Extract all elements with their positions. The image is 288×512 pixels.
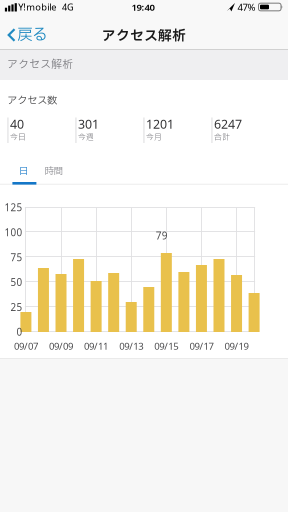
staticText: 25: [10, 300, 22, 314]
staticText: 4G: [62, 1, 74, 13]
staticText: 09/11: [84, 339, 108, 353]
staticText: 50: [10, 275, 22, 289]
staticText: 09/09: [49, 339, 73, 353]
staticText: 100: [4, 226, 22, 239]
button[interactable]: 時間: [38, 154, 68, 185]
staticText: 09/17: [189, 339, 213, 353]
staticText: 09/19: [224, 339, 248, 353]
staticText: 47%: [237, 0, 255, 14]
staticText: 0: [16, 325, 22, 339]
staticText: 301: [78, 116, 99, 132]
button[interactable]: 戻る: [7, 20, 47, 50]
staticText: アクセス解析: [7, 57, 73, 73]
staticText: 6247: [214, 116, 242, 132]
staticText: 今月: [146, 131, 162, 143]
staticText: 戻る: [17, 23, 47, 47]
staticText: アクセス数: [7, 93, 57, 108]
staticText: 1201: [146, 116, 174, 132]
staticText: 09/15: [154, 339, 178, 353]
staticText: 今日: [10, 131, 26, 143]
staticText: 79: [156, 229, 168, 242]
staticText: 時間: [44, 164, 62, 178]
staticText: 09/07: [14, 339, 38, 353]
staticText: Y!mobile: [18, 1, 56, 13]
staticText: 日: [19, 164, 28, 178]
staticText: 40: [10, 116, 24, 132]
staticText: アクセス解析: [102, 26, 186, 47]
staticText: 125: [4, 201, 22, 214]
button[interactable]: 日: [9, 154, 39, 185]
staticText: 今週: [78, 131, 94, 143]
staticText: 合計: [214, 131, 230, 143]
staticText: 75: [10, 251, 22, 264]
staticText: 09/13: [119, 339, 143, 353]
staticText: 19:40: [131, 0, 154, 14]
